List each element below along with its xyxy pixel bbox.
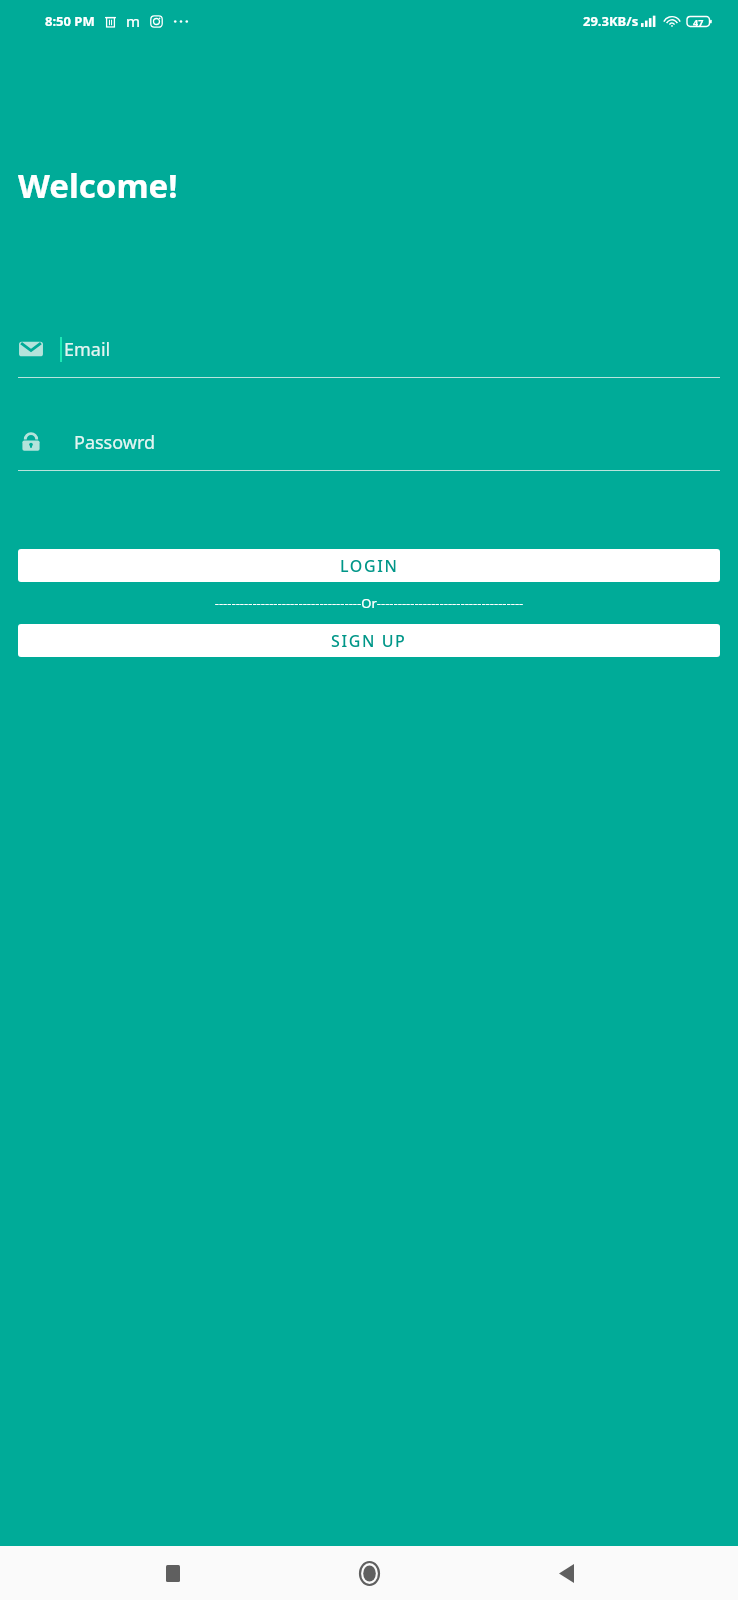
- staticText: 29.3KB/s: [583, 12, 639, 30]
- staticText: -----------------------------------Or---…: [0, 594, 738, 612]
- button[interactable]: Passowrd: [18, 414, 720, 471]
- staticText: LOGIN: [340, 555, 399, 577]
- staticText: m: [126, 11, 141, 31]
- button[interactable]: Recents: [149, 1549, 197, 1597]
- staticText: Welcome!: [18, 163, 178, 208]
- staticText: Passowrd: [74, 430, 156, 455]
- staticText: 8:50 PM: [45, 12, 95, 30]
- staticText: Email: [64, 337, 111, 362]
- button[interactable]: Email: [18, 321, 720, 378]
- button[interactable]: SIGN UP: [18, 624, 720, 657]
- staticText: 47: [693, 16, 704, 28]
- staticText: SIGN UP: [331, 630, 407, 652]
- button[interactable]: LOGIN: [18, 549, 720, 582]
- button[interactable]: Home: [345, 1549, 393, 1597]
- button[interactable]: Back: [542, 1549, 590, 1597]
